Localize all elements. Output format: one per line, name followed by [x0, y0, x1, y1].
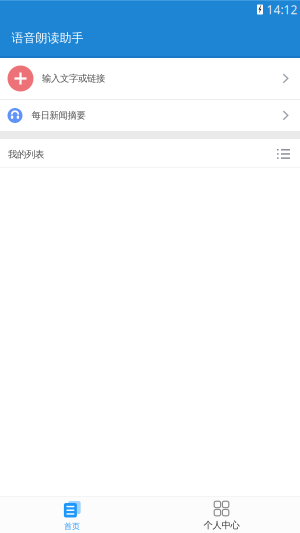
button[interactable]: 列表视图 [277, 149, 300, 160]
staticText: 我的列表 [8, 149, 44, 160]
staticText: 每日新闻摘要 [31, 110, 85, 121]
button[interactable]: 每日新闻摘要 [0, 100, 300, 131]
staticText: 输入文字或链接 [42, 73, 105, 84]
staticText: 14:12 [266, 1, 297, 17]
button[interactable]: 输入文字或链接 [0, 58, 300, 99]
staticText: 首页 [64, 521, 80, 531]
button[interactable]: 首页 [0, 497, 150, 533]
staticText: 语音朗读助手 [11, 31, 83, 45]
staticText: 个人中心 [203, 519, 239, 531]
button[interactable]: 个人中心 [150, 497, 300, 533]
